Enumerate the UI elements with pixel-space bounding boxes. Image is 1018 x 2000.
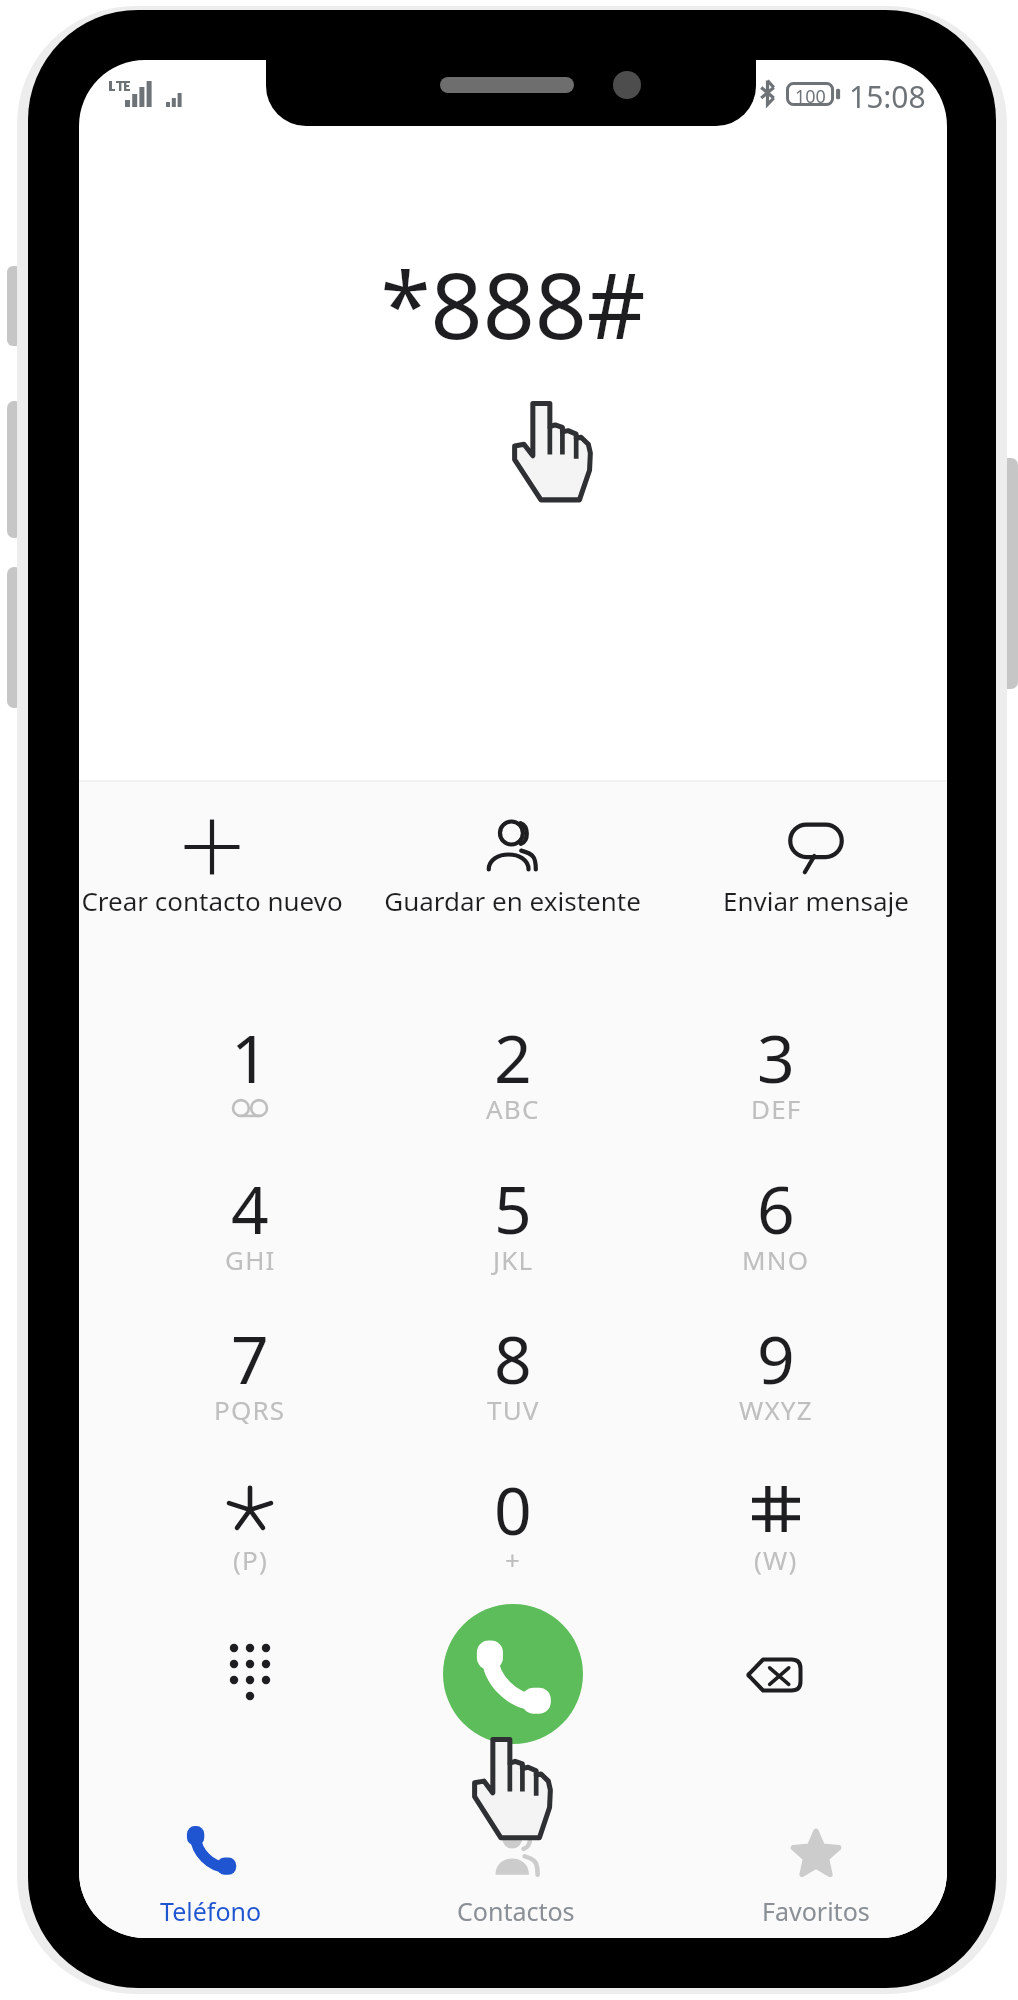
staticText: 7 [231, 1313, 269, 1403]
button[interactable]: Guardar en existente [366, 796, 658, 930]
button[interactable] [382, 1296, 644, 1428]
staticText: 3 [757, 1012, 795, 1102]
button[interactable] [382, 995, 644, 1127]
staticText: WXYZ [739, 1392, 813, 1427]
staticText: ABC [486, 1091, 540, 1126]
staticText: (W) [754, 1542, 798, 1577]
staticText: 9 [757, 1313, 795, 1403]
button[interactable]: Enviar mensaje [670, 796, 962, 930]
staticText: *888# [380, 242, 646, 352]
button[interactable]: Call [443, 1604, 583, 1744]
button[interactable] [119, 1146, 381, 1278]
staticText: 8 [494, 1313, 532, 1403]
staticText: + [505, 1542, 522, 1577]
staticText: 1 [231, 1012, 269, 1102]
button[interactable]: Contactos [376, 1806, 656, 1938]
button[interactable]: Show dial pad [180, 1602, 320, 1742]
staticText: Enviar mensaje [723, 883, 909, 918]
staticText: JKL [493, 1242, 534, 1277]
button[interactable] [119, 995, 381, 1127]
staticText: 5 [494, 1163, 532, 1253]
button[interactable] [382, 1146, 644, 1278]
button[interactable]: Backspace [704, 1605, 844, 1745]
staticText: 6 [757, 1163, 795, 1253]
button[interactable] [119, 1447, 381, 1579]
staticText: PQRS [214, 1392, 286, 1427]
button[interactable]: Crear contacto nuevo [66, 796, 358, 930]
staticText: DEF [751, 1091, 802, 1126]
staticText: Crear contacto nuevo [81, 883, 343, 918]
staticText: Teléfono [160, 1894, 262, 1928]
staticText: 0 [494, 1464, 532, 1554]
button[interactable]: Teléfono [71, 1806, 351, 1938]
button[interactable] [645, 1146, 907, 1278]
button[interactable] [119, 1296, 381, 1428]
staticText: TUV [487, 1392, 540, 1427]
button[interactable] [382, 1447, 644, 1579]
staticText: 2 [494, 1012, 532, 1102]
button[interactable] [645, 995, 907, 1127]
staticText: Favoritos [762, 1894, 870, 1928]
staticText: Guardar en existente [384, 883, 641, 918]
staticText: MNO [742, 1242, 810, 1277]
staticText: Contactos [457, 1894, 575, 1928]
staticText: GHI [225, 1242, 276, 1277]
staticText: (P) [233, 1542, 268, 1577]
button[interactable] [645, 1296, 907, 1428]
staticText: 4 [231, 1163, 269, 1253]
button[interactable] [645, 1447, 907, 1579]
staticText: 100 [795, 84, 826, 104]
button[interactable]: Favoritos [676, 1806, 956, 1938]
staticText: 15:08 [849, 76, 926, 110]
